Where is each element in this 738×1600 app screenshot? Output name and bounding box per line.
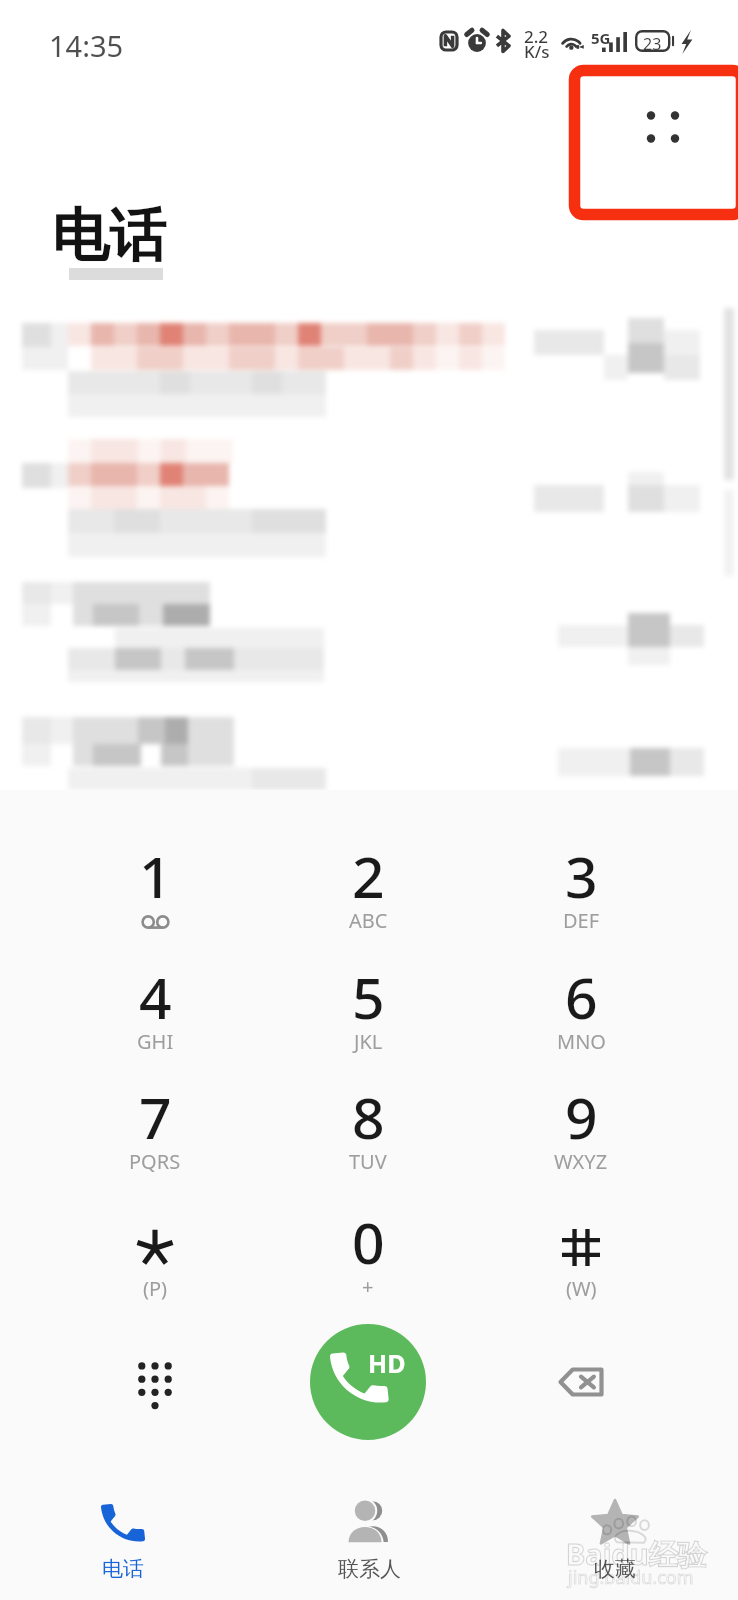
staticText: MNO xyxy=(557,1028,606,1055)
button[interactable]: 2 xyxy=(282,812,454,932)
staticText: 7 xyxy=(139,1078,172,1156)
staticText: 1 xyxy=(139,837,172,915)
button[interactable]: 电话 xyxy=(0,1450,246,1600)
button[interactable]: 3 xyxy=(495,812,667,932)
staticText: K/s xyxy=(524,40,550,63)
staticText: 4 xyxy=(139,958,172,1036)
button[interactable]: 4 xyxy=(69,933,241,1053)
staticText: 9 xyxy=(565,1078,598,1156)
staticText: 5G xyxy=(591,28,611,48)
staticText: ABC xyxy=(349,907,388,934)
staticText: 2 xyxy=(352,837,385,915)
staticText: 电话 xyxy=(52,200,166,272)
staticText: WXYZ xyxy=(554,1148,608,1175)
button[interactable]: 9 xyxy=(495,1053,667,1173)
button[interactable]: More options xyxy=(608,72,718,182)
button[interactable]: (P) xyxy=(69,1178,241,1298)
staticText: 14:35 xyxy=(49,26,124,65)
staticText: 2.2 xyxy=(524,25,549,48)
button[interactable]: Keypad xyxy=(75,1320,235,1444)
button[interactable]: 0 xyxy=(282,1178,454,1298)
staticText: 5 xyxy=(352,958,385,1036)
button[interactable]: 收藏 xyxy=(492,1450,738,1600)
staticText: TUV xyxy=(349,1148,387,1175)
button[interactable]: Delete xyxy=(501,1320,661,1444)
staticText: + xyxy=(362,1273,374,1300)
staticText: DEF xyxy=(563,907,600,934)
staticText: Baidu经验 xyxy=(566,1534,707,1574)
button[interactable]: 8 xyxy=(282,1053,454,1173)
button[interactable]: 6 xyxy=(495,933,667,1053)
button[interactable]: 1 xyxy=(69,812,241,932)
staticText: 6 xyxy=(565,958,598,1036)
staticText: 3 xyxy=(565,837,598,915)
staticText: 电话 xyxy=(102,1556,144,1582)
staticText: 8 xyxy=(352,1078,385,1156)
staticText: (W) xyxy=(566,1275,597,1302)
staticText: HD xyxy=(368,1346,406,1380)
staticText: 23 xyxy=(643,33,662,55)
button[interactable] xyxy=(0,290,738,790)
staticText: 联系人 xyxy=(338,1556,401,1582)
staticText: PQRS xyxy=(129,1148,181,1175)
button[interactable]: 7 xyxy=(69,1053,241,1173)
staticText: JKL xyxy=(354,1028,383,1055)
staticText: GHI xyxy=(137,1028,174,1055)
button[interactable]: Call xyxy=(310,1324,426,1440)
staticText: jing.baidu.com xyxy=(568,1565,694,1590)
button[interactable]: (W) xyxy=(495,1178,667,1298)
button[interactable]: 5 xyxy=(282,933,454,1053)
staticText: (P) xyxy=(143,1275,168,1302)
staticText: 收藏 xyxy=(594,1556,636,1582)
button[interactable]: 联系人 xyxy=(246,1450,492,1600)
staticText: 0 xyxy=(352,1203,385,1281)
